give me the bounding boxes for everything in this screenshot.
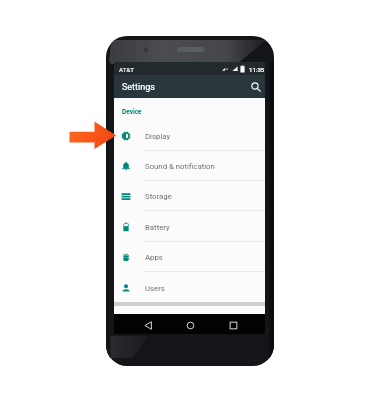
staticText: 11:35 xyxy=(249,66,265,73)
button[interactable]: Battery xyxy=(114,212,265,242)
button[interactable]: Home xyxy=(181,316,199,334)
staticText: Settings xyxy=(122,82,155,93)
button[interactable]: Users xyxy=(114,273,265,303)
button[interactable]: Display xyxy=(114,121,265,151)
staticText: Display xyxy=(145,132,171,141)
button[interactable]: Sound & notification xyxy=(114,151,265,181)
staticText: Apps xyxy=(145,253,163,262)
staticText: Battery xyxy=(145,223,170,232)
button[interactable]: Storage xyxy=(114,181,265,211)
staticText: Device xyxy=(122,108,142,116)
staticText: Storage xyxy=(145,192,172,201)
button[interactable]: Search xyxy=(247,78,265,96)
button[interactable]: Apps xyxy=(114,242,265,272)
button[interactable]: Recent apps xyxy=(224,316,242,334)
staticText: Sound & notification xyxy=(145,162,215,171)
staticText: AT&T xyxy=(119,66,135,73)
button[interactable]: Back xyxy=(139,316,157,334)
staticText: Users xyxy=(145,284,165,293)
